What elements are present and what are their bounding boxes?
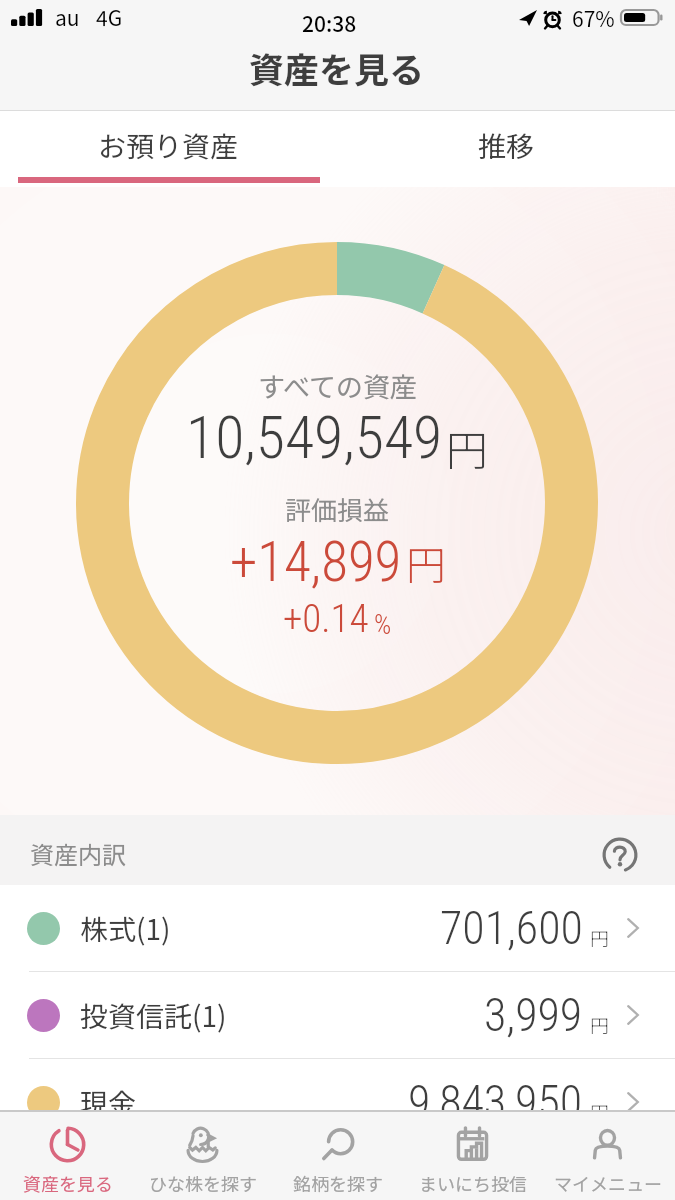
staticText: 20:38 (302, 8, 357, 38)
staticText: すべての資産 (258, 366, 418, 405)
button[interactable]: ひな株を探す (135, 1112, 270, 1200)
button[interactable]: 投資信託(1) (0, 972, 675, 1058)
button[interactable]: まいにち投信 (405, 1112, 540, 1200)
staticText: 現金 (80, 1082, 137, 1123)
staticText: +0.14 (283, 596, 369, 642)
staticText: 67% (572, 3, 615, 33)
staticText: 推移 (478, 125, 535, 166)
button[interactable]: 現金 (0, 1059, 675, 1145)
button[interactable]: ヘルプ (598, 833, 642, 877)
staticText: +14,899 (230, 530, 402, 594)
staticText: 株式(1) (80, 908, 171, 949)
staticText: 資産を見る (23, 1170, 113, 1196)
staticText: 4G (96, 2, 123, 32)
staticText: 円 (590, 1098, 610, 1126)
staticText: 円 (590, 1011, 610, 1039)
staticText: マイメニュー (554, 1170, 662, 1196)
staticText: 701,600 (440, 901, 583, 955)
button[interactable]: お預り資産 (0, 111, 337, 187)
staticText: お預り資産 (98, 125, 239, 166)
staticText: 銘柄を探す (293, 1170, 383, 1196)
staticText: 資産内訳 (30, 836, 126, 871)
staticText: 円 (406, 534, 446, 592)
staticText: 投資信託(1) (80, 995, 227, 1036)
staticText: 9,843,950 (408, 1075, 583, 1129)
button[interactable]: 銘柄を探す (270, 1112, 405, 1200)
staticText: au (55, 2, 80, 32)
staticText: 資産を見る (249, 42, 425, 93)
button[interactable]: 推移 (337, 111, 675, 187)
staticText: 円 (590, 924, 610, 952)
staticText: ひな株を探す (149, 1170, 257, 1196)
staticText: 評価損益 (285, 490, 390, 528)
button[interactable]: マイメニュー (540, 1112, 675, 1200)
staticText: まいにち投信 (419, 1170, 527, 1196)
staticText: % (374, 609, 392, 641)
staticText: 10,549,549 (186, 402, 443, 472)
staticText: 3,999 (484, 988, 583, 1042)
button[interactable]: 資産を見る (0, 1112, 135, 1200)
button[interactable]: 株式(1) (0, 885, 675, 971)
staticText: 円 (446, 417, 489, 478)
